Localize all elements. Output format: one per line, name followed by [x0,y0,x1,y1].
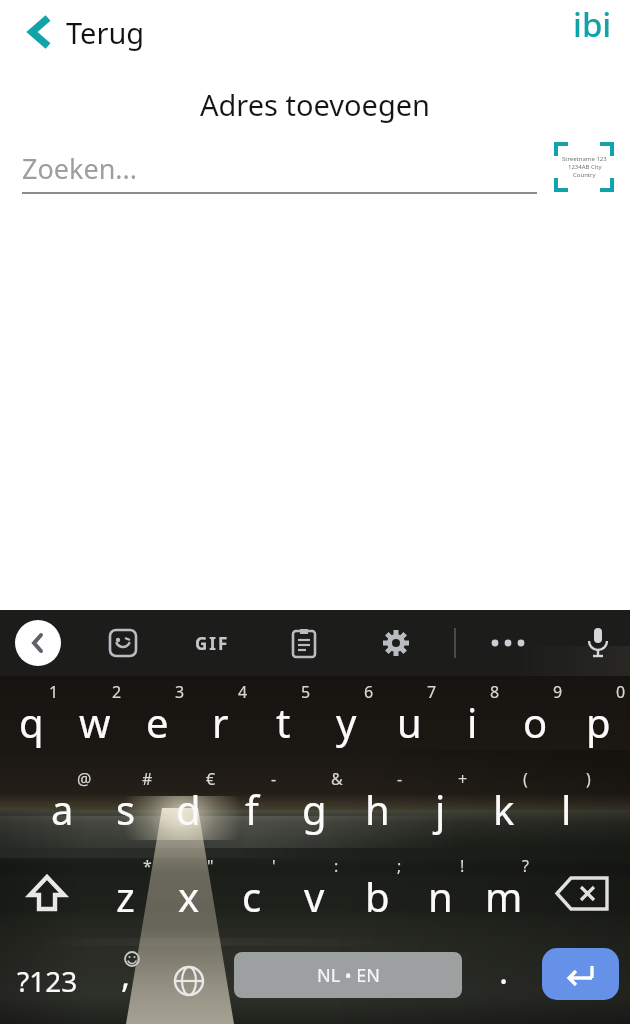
button[interactable]: s [94,763,157,850]
staticText: l [561,782,572,836]
staticText: k [493,782,515,836]
staticText: y [336,695,357,749]
staticText: ? [522,855,529,877]
button[interactable]: v [283,850,346,937]
button[interactable]: . [472,937,535,1024]
staticText: u [397,695,422,749]
button[interactable]: h [346,763,409,850]
button[interactable] [0,850,94,937]
staticText: ) [586,768,591,790]
staticText: 8 [490,681,500,703]
staticText: 9 [553,681,563,703]
staticText: q [19,695,44,749]
staticText: j [435,782,446,836]
staticText: # [142,768,153,790]
staticText: s [116,782,136,836]
button[interactable]: Terug [20,8,149,56]
button[interactable] [574,619,622,667]
button[interactable]: d [157,763,220,850]
staticText: Country [573,171,596,179]
staticText: GIF [195,632,230,655]
staticText: n [428,869,453,923]
button[interactable]: t [252,676,315,763]
button[interactable]: g [283,763,346,850]
staticText: g [302,782,327,836]
button[interactable]: j [409,763,472,850]
staticText: p [586,695,611,749]
button[interactable]: u [378,676,441,763]
button[interactable]: Zoeken... [22,146,537,194]
staticText: + [458,768,468,790]
staticText: m [485,869,523,923]
staticText: a [51,782,74,836]
button[interactable]: b [346,850,409,937]
button[interactable]: f [220,763,283,850]
button[interactable] [99,619,147,667]
staticText: 0 [616,681,626,703]
button[interactable]: r [189,676,252,763]
button[interactable] [484,619,532,667]
button[interactable]: e [126,676,189,763]
staticText: " [207,855,214,877]
staticText: € [206,768,216,790]
staticText: h [365,782,390,836]
staticText: v [304,869,325,923]
button[interactable]: n [409,850,472,937]
button[interactable]: x [157,850,220,937]
staticText: x [178,869,200,923]
staticText: ; [397,855,402,877]
button[interactable] [535,850,629,937]
staticText: e [146,695,169,749]
button[interactable]: c [220,850,283,937]
staticText: 7 [427,681,437,703]
button[interactable]: o [504,676,567,763]
button[interactable]: , [94,937,157,1024]
staticText: w [79,695,111,749]
button[interactable] [157,937,220,1024]
button[interactable]: NL • EN [234,952,462,998]
staticText: 1234AB City [568,163,602,171]
button[interactable] [15,620,61,666]
staticText: - [271,768,277,790]
staticText: ! [460,855,465,877]
button[interactable] [542,948,619,1000]
button[interactable]: p [567,676,630,763]
button[interactable]: i [441,676,504,763]
staticText: b [365,869,390,923]
button[interactable]: GIF [182,619,242,667]
staticText: 2 [112,681,122,703]
staticText: * [143,855,152,877]
staticText: NL • EN [317,963,380,988]
button[interactable]: z [94,850,157,937]
staticText: 1 [49,681,59,703]
staticText: ?123 [17,962,78,1000]
button[interactable]: Streetname 123 [554,142,614,192]
staticText: : [334,855,339,877]
button[interactable] [280,619,328,667]
button[interactable] [372,619,420,667]
staticText: Streetname 123 [562,155,607,163]
staticText: ( [523,768,528,790]
staticText: d [176,782,201,836]
staticText: . [499,948,509,994]
staticText: ibi [573,2,612,47]
button[interactable]: y [315,676,378,763]
staticText: f [245,782,259,836]
button[interactable]: w [63,676,126,763]
staticText: 3 [175,681,185,703]
staticText: ' [272,855,276,877]
staticText: , [121,952,131,998]
button[interactable]: l [535,763,598,850]
staticText: Adres toevoegen [0,85,630,124]
staticText: - [397,768,403,790]
button[interactable]: q [0,676,63,763]
button[interactable]: ibi [573,2,612,47]
staticText: i [467,695,478,749]
staticText: z [116,869,135,923]
staticText: 5 [301,681,311,703]
button[interactable]: ?123 [0,937,94,1024]
button[interactable]: k [472,763,535,850]
button[interactable]: m [472,850,535,937]
staticText: Terug [66,13,145,52]
button[interactable]: a [31,763,94,850]
